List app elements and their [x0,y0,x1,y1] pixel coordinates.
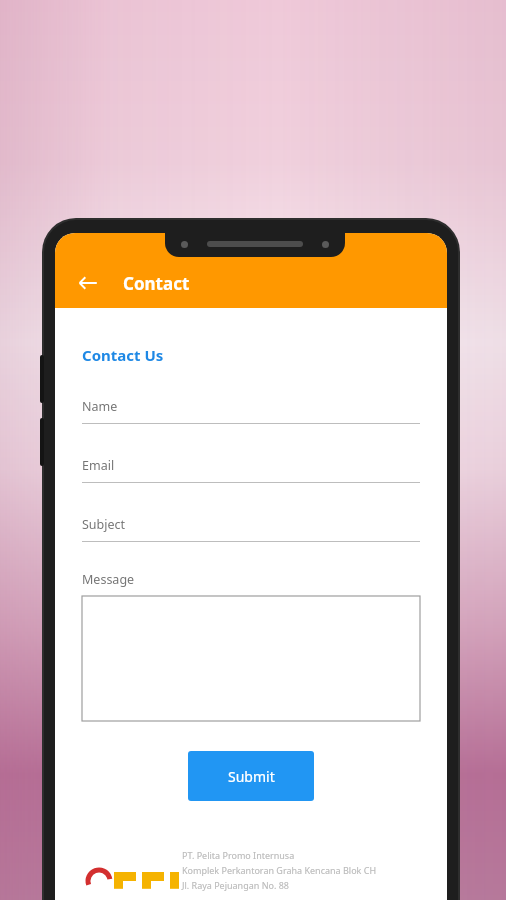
staticText: Submit [228,767,275,786]
staticText: PT. Pelita Promo Internusa [182,849,295,861]
button[interactable] [82,596,420,721]
staticText: Email [82,457,115,474]
staticText: Contact [123,272,190,295]
button[interactable]: Subject [82,516,420,542]
button[interactable]: Back [67,262,109,304]
button[interactable]: Submit [188,751,314,801]
staticText: Message [82,571,135,588]
button[interactable]: Name [82,398,420,424]
button[interactable]: Email [82,457,420,483]
staticText: Komplek Perkantoran Graha Kencana Blok C… [182,864,377,876]
staticText: Contact Us [82,345,164,365]
staticText: Name [82,398,118,415]
staticText: Subject [82,516,126,533]
staticText: Jl. Raya Pejuangan No. 88 [182,879,289,891]
